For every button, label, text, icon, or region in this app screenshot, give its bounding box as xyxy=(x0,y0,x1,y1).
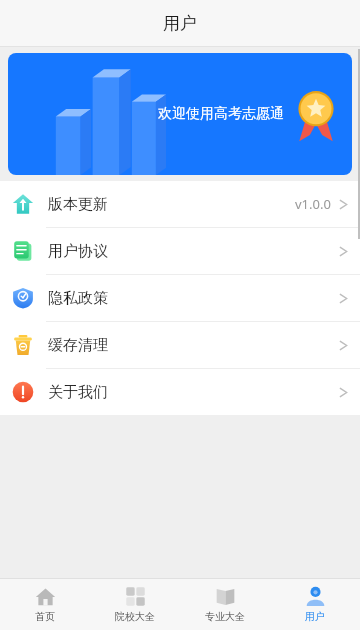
button[interactable]: 专业大全 xyxy=(180,578,270,630)
staticText: 首页 xyxy=(35,610,55,623)
button[interactable]: 缓存清理 xyxy=(0,322,360,368)
button[interactable]: 欢迎使用高考志愿通 xyxy=(8,53,352,175)
button[interactable]: 用户协议 xyxy=(0,228,360,274)
button[interactable]: 用户 xyxy=(270,578,360,630)
staticText: 欢迎使用高考志愿通 xyxy=(158,105,284,123)
button[interactable]: 关于我们 xyxy=(0,369,360,415)
staticText: 缓存清理 xyxy=(48,336,108,355)
staticText: 版本更新 xyxy=(48,195,108,214)
button[interactable]: 版本更新 xyxy=(0,181,360,227)
staticText: 隐私政策 xyxy=(48,289,108,308)
staticText: 院校大全 xyxy=(115,610,155,623)
button[interactable]: 首页 xyxy=(0,578,90,630)
staticText: 用户协议 xyxy=(48,242,108,261)
button[interactable]: 院校大全 xyxy=(90,578,180,630)
staticText: v1.0.0 xyxy=(295,195,331,213)
staticText: 关于我们 xyxy=(48,383,108,402)
staticText: 用户 xyxy=(163,13,197,34)
staticText: 专业大全 xyxy=(205,610,245,623)
staticText: 用户 xyxy=(305,610,325,623)
button[interactable]: 隐私政策 xyxy=(0,275,360,321)
